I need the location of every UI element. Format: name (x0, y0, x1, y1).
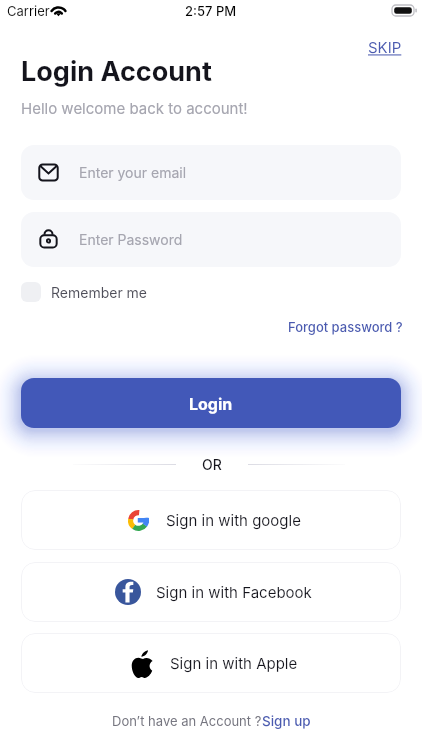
staticText: SKIP (368, 38, 402, 56)
button[interactable]: Sign up (262, 713, 311, 729)
staticText: Login (189, 394, 233, 413)
staticText: Sign in with Apple (170, 654, 298, 672)
button[interactable]: Login (21, 378, 401, 428)
button[interactable]: Password (21, 212, 401, 267)
staticText: 2:57 PM (185, 3, 237, 19)
button[interactable]: Forgot password ? (288, 319, 403, 335)
staticText: Enter Password (79, 231, 183, 248)
button[interactable]: Sign in with Apple (21, 633, 401, 693)
button[interactable]: Email (21, 145, 401, 200)
staticText: Sign in with Facebook (156, 583, 312, 601)
button[interactable]: Sign in with Facebook (21, 562, 401, 622)
staticText: Enter your email (79, 164, 187, 181)
staticText: OR (202, 456, 222, 473)
staticText: Sign up (262, 713, 311, 729)
button[interactable]: Remember me (21, 282, 148, 302)
staticText: Remember me (51, 284, 148, 301)
staticText: Forgot password ? (288, 319, 403, 335)
staticText: Sign in with google (166, 511, 301, 529)
staticText: Login Account (21, 55, 212, 88)
button[interactable]: SKIP (366, 36, 404, 58)
button[interactable]: Sign in with google (21, 490, 401, 550)
other: Password (39, 230, 58, 249)
staticText: Hello welcome back to account! (21, 99, 248, 117)
other: Email (39, 163, 58, 182)
staticText: Don’t have an Account ? (112, 713, 262, 729)
staticText: Carrier (7, 3, 50, 19)
